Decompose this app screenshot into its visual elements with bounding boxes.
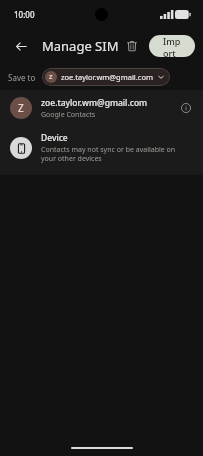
button[interactable]: Device (0, 126, 203, 169)
button[interactable]: Delete (119, 33, 145, 59)
staticText: Import (163, 35, 181, 57)
staticText: zoe.taylor.wm@gmail.com (41, 97, 148, 109)
button[interactable]: Info (177, 99, 195, 117)
button[interactable]: Z (42, 68, 170, 86)
staticText: Z (18, 101, 24, 115)
staticText: Device (41, 132, 68, 144)
button[interactable]: Back (8, 33, 34, 59)
button[interactable]: Import (149, 35, 195, 57)
button[interactable]: Z (0, 90, 203, 126)
staticText: zoe.taylor.wm@gmail.com (61, 72, 153, 82)
staticText: Google Contacts (41, 110, 96, 120)
staticText: Contacts may not sync or be available on… (41, 145, 189, 163)
staticText: Manage SIM (42, 37, 119, 55)
staticText: 10:00 (14, 9, 35, 20)
staticText: Z (49, 73, 53, 81)
staticText: Save to (8, 72, 36, 83)
